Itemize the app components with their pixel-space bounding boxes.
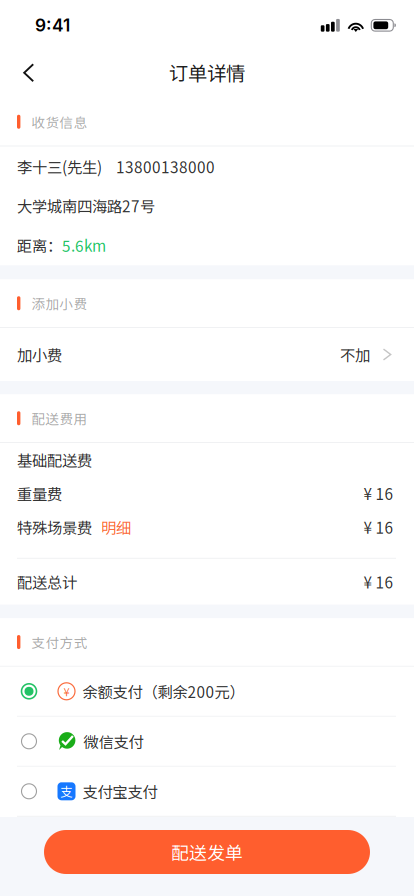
button[interactable]: 加小费: [0, 328, 414, 381]
staticText: 9:41: [35, 15, 70, 36]
staticText: 基础配送费: [17, 449, 92, 471]
staticText: 大学城南四海路27号: [17, 194, 155, 217]
staticText: ¥ 16: [364, 516, 394, 538]
staticText: 支: [60, 782, 73, 800]
staticText: 距离：: [17, 234, 62, 256]
staticText: 加小费: [17, 343, 62, 366]
staticText: ¥ 16: [364, 482, 394, 504]
button[interactable]: 微信支付: [0, 717, 414, 767]
staticText: 配送费用: [31, 408, 87, 428]
staticText: 13800138000: [116, 155, 215, 178]
button[interactable]: ¥: [0, 667, 414, 717]
button[interactable]: 配送发单: [44, 830, 370, 874]
staticText: 不加: [340, 343, 370, 366]
staticText: 收货信息: [31, 112, 87, 132]
staticText: 5.6km: [62, 234, 106, 256]
staticText: 特殊场景费: [17, 516, 92, 538]
staticText: ¥ 16: [364, 571, 394, 593]
staticText: 添加小费: [31, 293, 87, 313]
button[interactable]: 支: [0, 767, 414, 817]
button[interactable]: 返回: [0, 44, 50, 98]
staticText: 余额支付（剩余200元）: [82, 680, 244, 702]
staticText: ¥: [63, 683, 69, 699]
staticText: 配送发单: [171, 839, 243, 865]
staticText: 李十三(先生): [17, 155, 102, 178]
staticText: 支付方式: [31, 632, 87, 652]
staticText: 重量费: [17, 482, 62, 504]
staticText: 支付宝支付: [82, 780, 157, 802]
staticText: 明细: [101, 516, 131, 538]
staticText: 微信支付: [83, 730, 143, 752]
staticText: 配送总计: [17, 571, 77, 593]
staticText: 订单详情: [169, 58, 245, 86]
